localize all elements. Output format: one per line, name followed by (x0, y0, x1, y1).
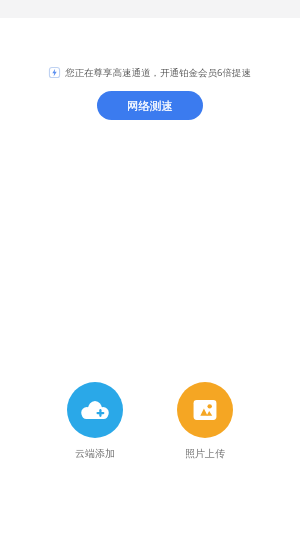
button[interactable]: Cloud add (67, 382, 123, 460)
button[interactable]: Photo upload (177, 382, 233, 460)
staticText: 云端添加 (75, 447, 115, 460)
button[interactable]: 网络测速 (97, 91, 203, 120)
staticText: 您正在尊享高速通道，开通铂金会员6倍提速 (65, 66, 251, 79)
button[interactable]: 您正在尊享高速通道，开通铂金会员6倍提速 (0, 66, 300, 79)
staticText: 网络测速 (127, 99, 173, 113)
staticText: 照片上传 (185, 447, 225, 460)
